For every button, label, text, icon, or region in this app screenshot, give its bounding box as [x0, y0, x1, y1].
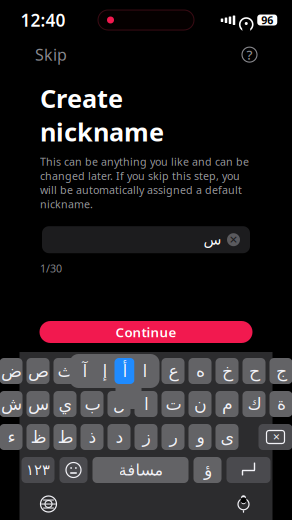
staticText: 96 — [261, 13, 273, 27]
staticText: ع — [168, 361, 178, 381]
button[interactable]: و — [188, 424, 211, 450]
button[interactable]: ط — [53, 424, 76, 450]
button[interactable]: ء — [0, 424, 22, 450]
staticText: ? — [246, 46, 252, 63]
staticText: 12:40 — [20, 8, 65, 31]
staticText: Skip — [35, 44, 67, 65]
button[interactable]: Clear text — [227, 233, 240, 246]
button[interactable]: Help — [238, 43, 261, 66]
button[interactable]: Emoji — [59, 457, 87, 483]
button[interactable]: ن — [188, 391, 211, 417]
staticText: م — [221, 394, 232, 414]
button[interactable]: ذ — [80, 424, 103, 450]
staticText: ط — [57, 427, 73, 447]
staticText: ظ — [30, 427, 46, 447]
button[interactable]: ١٢٣ — [21, 457, 54, 483]
button[interactable]: ؤ — [193, 457, 221, 483]
button[interactable]: Dictation — [226, 490, 260, 518]
staticText: ق — [85, 361, 98, 381]
staticText: ر — [169, 427, 177, 447]
staticText: س — [203, 231, 221, 248]
staticText: ى — [220, 427, 234, 447]
staticText: ه — [195, 361, 204, 381]
staticText: ض — [0, 361, 21, 381]
button[interactable]: ز — [134, 424, 157, 450]
button[interactable]: Skip — [31, 40, 71, 69]
staticText: 1/30 — [40, 261, 62, 275]
staticText: ي — [58, 394, 72, 414]
button[interactable]: ص — [26, 358, 49, 384]
staticText: إ — [102, 361, 107, 381]
staticText: ✕ — [272, 432, 280, 442]
button[interactable]: ظ — [26, 424, 49, 450]
staticText: أ — [122, 361, 127, 381]
staticText: ز — [142, 427, 150, 447]
button[interactable]: Delete — [258, 424, 292, 450]
button[interactable]: خ — [215, 358, 238, 384]
staticText: مسافة — [118, 461, 163, 479]
staticText: ص — [27, 361, 48, 381]
staticText: ف — [110, 361, 128, 381]
staticText: د — [115, 427, 123, 447]
staticText: ا — [142, 361, 147, 381]
button[interactable]: ا — [134, 391, 157, 417]
button[interactable]: ع — [161, 358, 184, 384]
button[interactable]: Return — [226, 457, 270, 483]
staticText: ذ — [88, 427, 96, 447]
button[interactable]: ة — [269, 391, 292, 417]
button[interactable]: ت — [161, 391, 184, 417]
staticText: غ — [141, 361, 151, 381]
button[interactable]: ب — [80, 391, 103, 417]
staticText: ج — [275, 361, 286, 381]
button[interactable]: ح — [242, 358, 265, 384]
button[interactable]: د — [107, 424, 130, 450]
staticText: ل — [112, 394, 125, 414]
staticText: خ — [221, 361, 232, 381]
button[interactable]: ك — [242, 391, 265, 417]
staticText: ١٢٣ — [26, 462, 50, 478]
button[interactable]: ث — [53, 358, 76, 384]
staticText: ء — [7, 427, 15, 447]
staticText: ح — [248, 361, 259, 381]
staticText: ن — [193, 394, 206, 414]
button[interactable]: ى — [215, 424, 238, 450]
staticText: و — [196, 427, 204, 447]
staticText: ش — [0, 394, 21, 414]
staticText: Continue — [115, 323, 176, 341]
button[interactable]: ش — [0, 391, 22, 417]
button[interactable]: ض — [0, 358, 22, 384]
button[interactable]: Next keyboard — [31, 490, 65, 518]
button[interactable]: ج — [269, 358, 292, 384]
staticText: Create nickname — [40, 81, 164, 148]
button[interactable]: ف — [107, 358, 130, 384]
button[interactable]: غ — [134, 358, 157, 384]
button[interactable]: م — [215, 391, 238, 417]
staticText: س — [27, 394, 48, 414]
button[interactable]: مسافة — [92, 457, 188, 483]
staticText: ب — [84, 394, 100, 414]
button[interactable]: ي — [53, 391, 76, 417]
staticText: ✕ — [229, 234, 238, 246]
staticText: ت — [165, 394, 181, 414]
staticText: ك — [247, 394, 261, 414]
button[interactable]: Continue — [39, 321, 252, 343]
staticText: ؤ — [203, 460, 211, 480]
button[interactable]: ق — [80, 358, 103, 384]
button[interactable]: ل — [107, 391, 130, 417]
button[interactable]: س — [26, 391, 49, 417]
staticText: ة — [276, 394, 285, 414]
button[interactable]: ه — [188, 358, 211, 384]
staticText: ا — [143, 394, 148, 414]
staticText: This can be anything you like and can be… — [40, 154, 249, 211]
button[interactable]: ر — [161, 424, 184, 450]
staticText: ث — [57, 361, 73, 381]
staticText: آ — [82, 361, 87, 381]
